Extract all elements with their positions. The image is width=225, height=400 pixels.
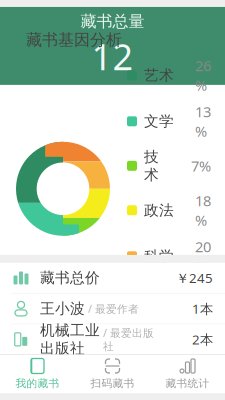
staticText: 16% [195,283,211,322]
staticText: 机械工业出版社 [40,321,100,357]
staticText: 13% [195,102,211,141]
staticText: ￥245 [176,269,213,287]
staticText: 王小波 [40,300,85,318]
staticText: 科学 [144,247,174,265]
button[interactable]: 藏书总价 ￥245 [0,263,225,293]
staticText: 文学 [144,112,174,130]
button[interactable]: 藏书统计 [150,355,225,393]
staticText: 2本 [192,330,213,348]
staticText: 扫码藏书 [90,377,134,390]
staticText: 艺术 [144,66,174,84]
button[interactable]: 我的藏书 [0,355,75,393]
staticText: 藏书总量 [80,12,144,31]
staticText: 我的藏书 [15,377,59,390]
staticText: / 最爱出版社 [103,326,154,353]
staticText: 政法 [144,201,174,219]
staticText: 1本 [192,300,213,317]
staticText: 藏书基因分析 [26,30,122,50]
staticText: 26% [195,56,211,95]
staticText: / 最爱作者 [88,302,139,316]
staticText: 技术 [144,148,159,184]
staticText: 藏书总价 [40,269,100,287]
staticText: 藏书统计 [165,377,209,390]
staticText: 12 [91,32,133,80]
staticText: 18% [195,191,211,230]
button[interactable]: 王小波 最爱作者 1本 [0,294,225,324]
staticText: 20% [195,237,211,276]
staticText: 7% [191,156,211,176]
button[interactable]: 扫码藏书 [75,355,150,393]
button[interactable]: 机械工业出版社 最爱出版社 2本 [0,324,225,354]
